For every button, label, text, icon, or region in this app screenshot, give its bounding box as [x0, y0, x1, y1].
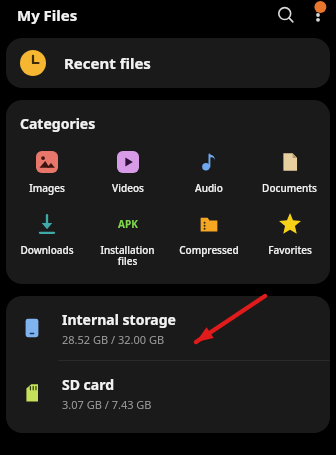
staticText: My Files — [17, 5, 78, 25]
staticText: 3.07 GB / 7.43 GB — [62, 397, 152, 412]
staticText: Images — [29, 181, 65, 195]
button[interactable]: Videos — [87, 147, 168, 197]
button[interactable]: Images — [6, 147, 87, 197]
button[interactable]: Downloads — [6, 209, 87, 259]
staticText: Internal storage — [62, 310, 176, 329]
staticText: SD card — [62, 375, 115, 394]
staticText: Recent files — [64, 53, 151, 73]
staticText: Audio — [195, 181, 223, 195]
button[interactable]: Documents — [249, 147, 330, 197]
staticText: 28.52 GB / 32.00 GB — [62, 332, 165, 347]
button[interactable]: APK — [87, 209, 168, 270]
staticText: Compressed — [179, 243, 239, 257]
button[interactable]: Compressed — [168, 209, 249, 259]
button[interactable]: Internal storage — [6, 296, 330, 360]
staticText: Favorites — [268, 243, 312, 257]
staticText: Installation files — [100, 243, 155, 268]
staticText: Categories — [20, 114, 96, 133]
button[interactable]: Favorites — [249, 209, 330, 259]
button[interactable]: SD card — [6, 361, 330, 425]
staticText: Videos — [112, 181, 144, 195]
staticText: Documents — [262, 181, 317, 195]
button[interactable]: Recent files — [6, 38, 330, 88]
button[interactable]: More options — [302, 0, 334, 30]
button[interactable]: Audio — [168, 147, 249, 197]
button[interactable]: Search — [270, 0, 302, 30]
staticText: APK — [118, 217, 138, 231]
staticText: Downloads — [20, 243, 74, 257]
